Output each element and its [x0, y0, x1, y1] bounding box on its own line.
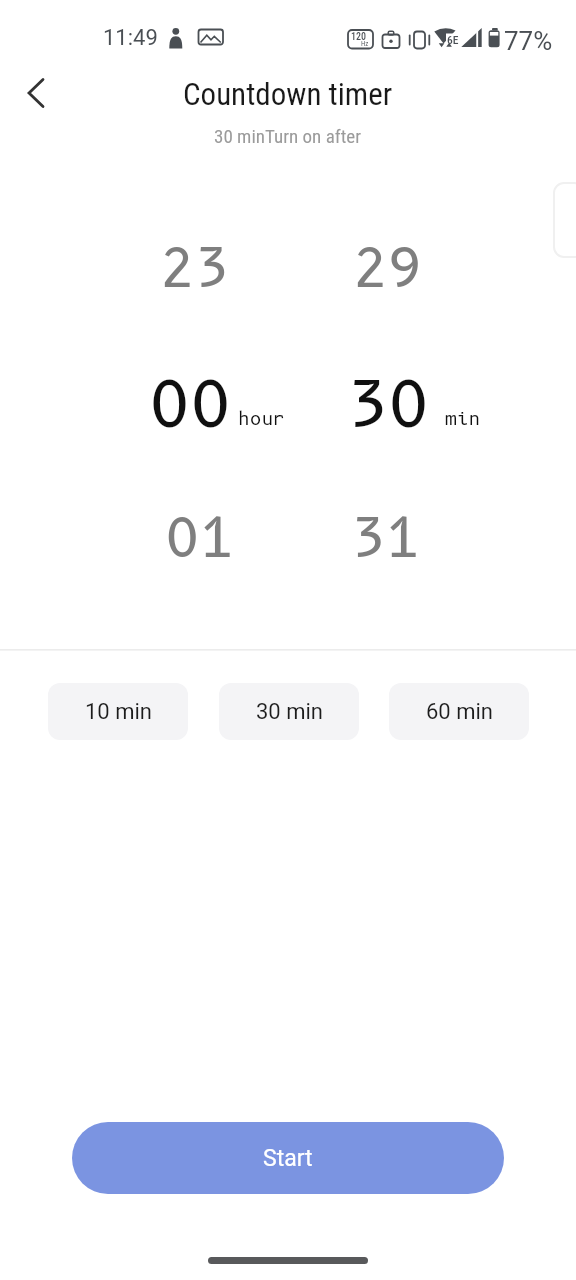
button[interactable]: 31: [305, 506, 465, 566]
staticText: 23: [160, 236, 229, 296]
button[interactable]: Start: [72, 1122, 504, 1194]
staticText: 30 min: [256, 699, 323, 725]
staticText: 60 min: [426, 699, 493, 725]
button[interactable]: 01: [119, 506, 279, 566]
staticText: Countdown timer: [183, 76, 393, 112]
staticText: Hz: [361, 40, 369, 48]
button[interactable]: 30: [308, 366, 468, 443]
staticText: 6E: [447, 33, 459, 45]
button[interactable]: 29: [307, 236, 467, 296]
button[interactable]: 00: [110, 366, 270, 443]
staticText: hour: [238, 408, 285, 430]
button[interactable]: 60 min: [389, 683, 529, 740]
staticText: 10 min: [85, 699, 152, 725]
staticText: 01: [165, 506, 234, 566]
staticText: Start: [263, 1145, 313, 1172]
button[interactable]: 10 min: [48, 683, 188, 740]
staticText: 30 minTurn on after: [214, 125, 362, 147]
staticText: 77%: [504, 26, 553, 52]
button[interactable]: [12, 69, 60, 117]
staticText: min: [445, 408, 481, 430]
staticText: 00: [149, 366, 231, 443]
staticText: 120: [351, 31, 367, 42]
staticText: 29: [353, 236, 422, 296]
staticText: 30: [347, 366, 429, 443]
staticText: 11:49: [103, 25, 158, 50]
button[interactable]: 30 min: [219, 683, 359, 740]
staticText: 31: [351, 506, 420, 566]
button[interactable]: 23: [114, 236, 274, 296]
